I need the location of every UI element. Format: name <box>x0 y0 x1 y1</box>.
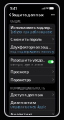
button[interactable]: Сменить пароль <box>9 35 55 43</box>
staticText: Диагностика <box>10 100 36 105</box>
staticText: Защита данных <box>12 12 44 17</box>
staticText: Аналитика <box>10 112 32 117</box>
staticText: Сменить пароль <box>10 36 41 42</box>
staticText: Доступ к данным <box>10 92 43 97</box>
staticText: 9:41 <box>10 6 17 11</box>
button[interactable]: Разрешить уведомления <box>9 56 55 67</box>
staticText: Просмотр <box>10 69 28 74</box>
button[interactable]: Просмотр <box>9 68 55 75</box>
staticText: Код подтверждения на почту <box>10 50 53 53</box>
staticText: Параметры <box>10 77 31 82</box>
button[interactable]: Диагностика <box>9 99 55 110</box>
staticText: Отправлять отчёты Apple <box>10 105 46 109</box>
staticText: ОБЩИЕ <box>10 20 20 23</box>
staticText: Двухфакторная защита <box>10 44 54 50</box>
button[interactable]: Использовать код-пароль <box>9 24 55 35</box>
button[interactable]: Двухфакторная защита <box>9 43 55 55</box>
button[interactable]: More options <box>51 14 55 15</box>
staticText: Использовать код-пароль <box>10 25 54 30</box>
button[interactable]: Аналитика <box>9 110 55 118</box>
staticText: Разрешить уведомления <box>10 57 46 63</box>
staticText: Баннеры, звуки и значки <box>10 63 43 66</box>
staticText: Требуется при разблокировке <box>10 30 51 34</box>
staticText: КОНФИДЕНЦИАЛЬНОСТЬ <box>10 87 45 90</box>
button[interactable]: Доступ к данным <box>9 91 55 98</box>
button[interactable]: Защита данных <box>9 12 44 17</box>
button[interactable]: Параметры <box>9 76 55 83</box>
